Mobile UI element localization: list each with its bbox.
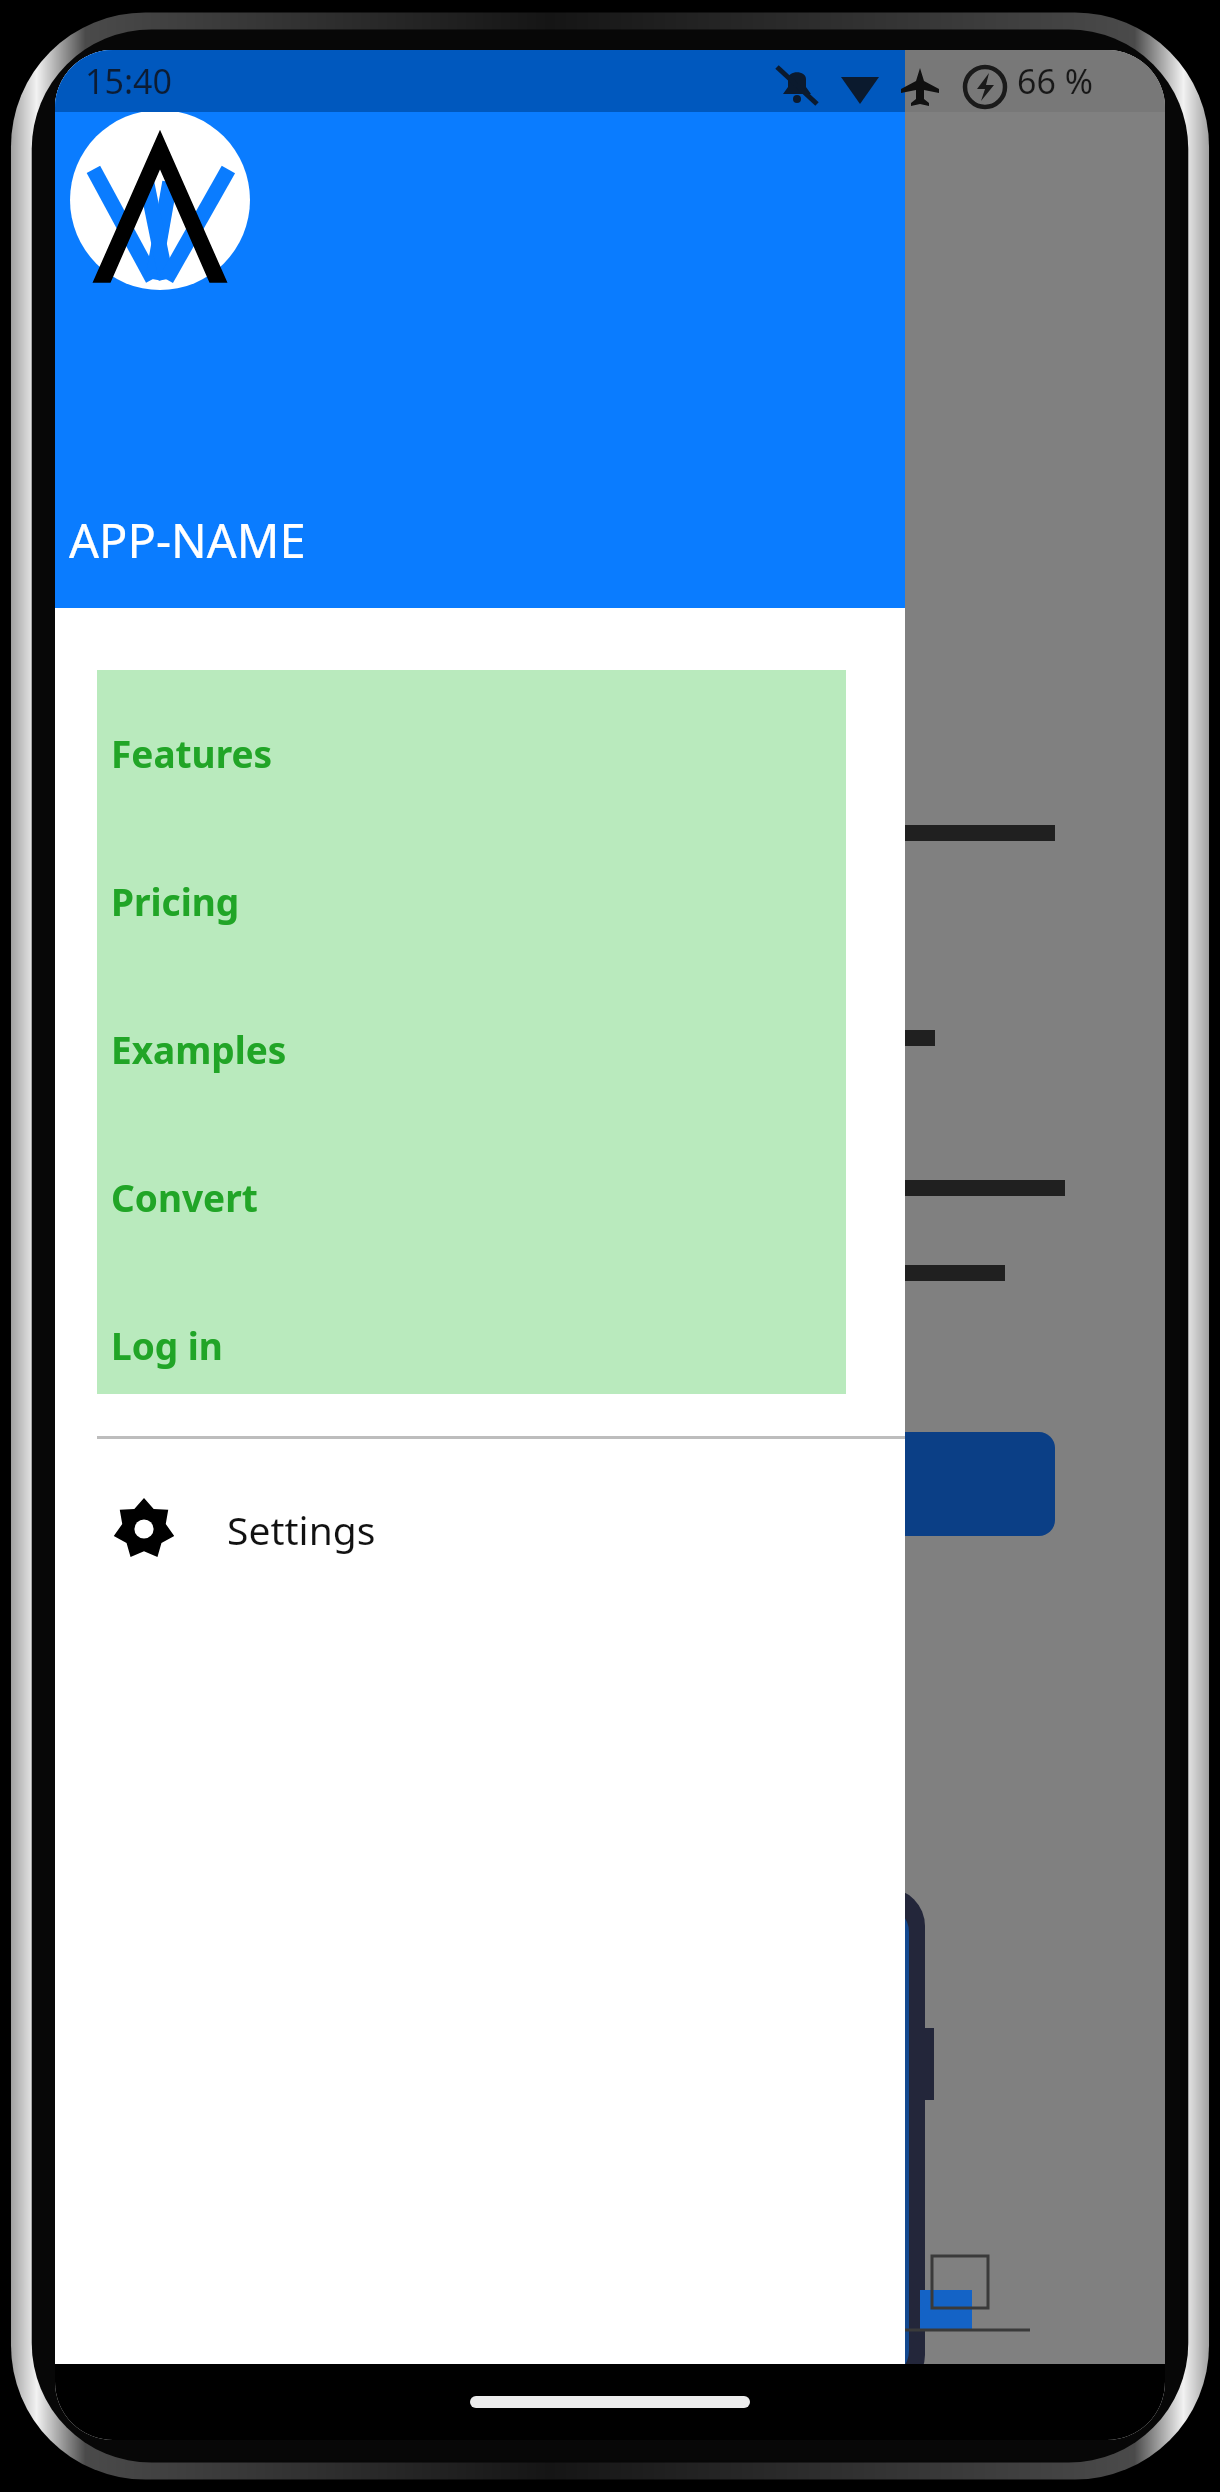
staticText: APP-NAME: [69, 508, 306, 572]
staticText: Log in: [111, 1320, 223, 1370]
button[interactable]: Pricing: [97, 802, 846, 950]
staticText: Pricing: [111, 876, 240, 926]
button[interactable]: Features: [97, 670, 846, 802]
staticText: 66 %: [1017, 58, 1093, 104]
staticText: 15:40: [85, 58, 172, 104]
staticText: Features: [111, 728, 273, 778]
staticText: Convert: [111, 1172, 258, 1222]
staticText: Examples: [111, 1024, 287, 1074]
button[interactable]: Examples: [97, 950, 846, 1098]
staticText: Settings: [227, 1503, 376, 1556]
button[interactable]: Log in: [97, 1246, 846, 1394]
other: Settings: [113, 1498, 175, 1560]
button[interactable]: Settings: [55, 1439, 905, 1619]
button[interactable]: Convert: [97, 1098, 846, 1246]
